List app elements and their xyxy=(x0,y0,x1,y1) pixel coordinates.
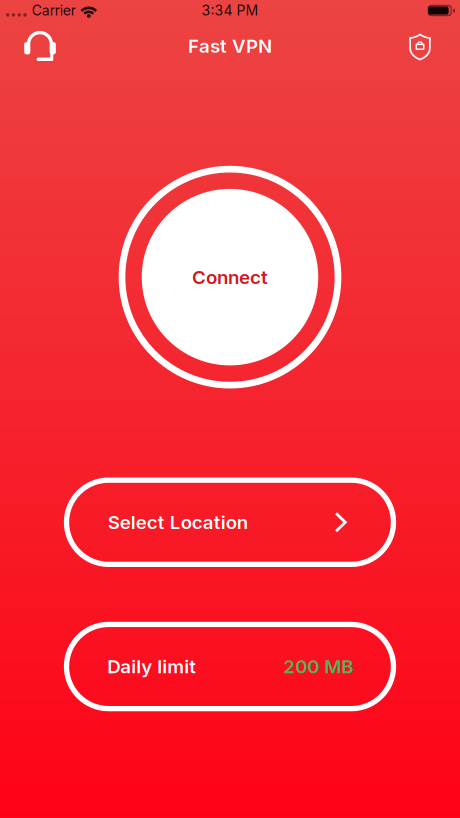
staticText: Carrier xyxy=(32,2,76,19)
staticText: 200 MB xyxy=(283,655,353,678)
staticText: Daily limit xyxy=(107,655,196,678)
staticText: Select Location xyxy=(108,511,248,534)
staticText: 3:34 PM xyxy=(201,2,258,19)
button[interactable]: Connect xyxy=(119,166,341,388)
staticText: Connect xyxy=(192,266,268,288)
button[interactable]: Select Location xyxy=(64,477,396,567)
button[interactable]: Support xyxy=(16,24,64,68)
button[interactable]: Security xyxy=(396,24,444,68)
button[interactable]: Daily limit xyxy=(64,622,396,711)
staticText: Fast VPN xyxy=(188,35,272,57)
